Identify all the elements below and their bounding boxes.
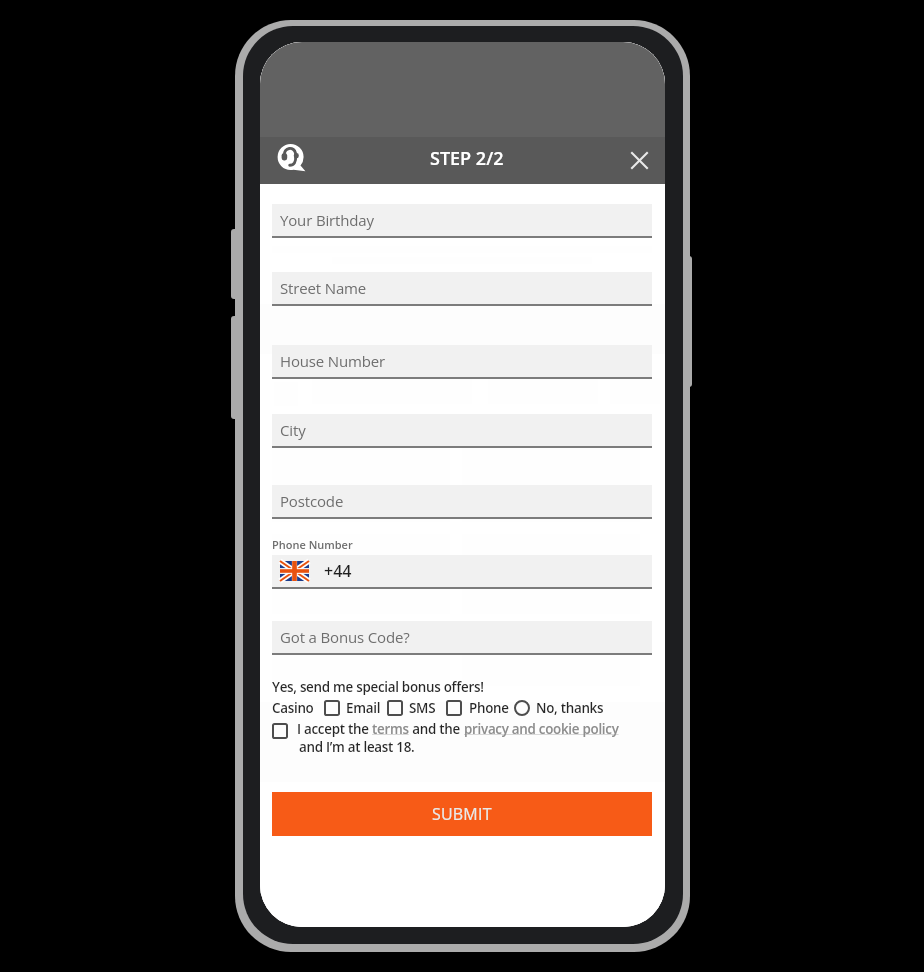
staticText: Street Name xyxy=(280,278,367,298)
staticText: I accept the xyxy=(297,720,372,738)
button[interactable]: Accept terms xyxy=(272,723,288,739)
staticText: Casino xyxy=(272,699,314,717)
button[interactable]: privacy and cookie policy xyxy=(464,720,619,738)
button[interactable]: Street Name xyxy=(272,272,652,306)
staticText: and I’m at least 18. xyxy=(299,738,415,756)
staticText: Email xyxy=(346,699,381,717)
staticText: +44 xyxy=(324,560,352,582)
staticText: Phone xyxy=(469,699,509,717)
staticText: and the xyxy=(409,720,464,738)
staticText: SMS xyxy=(409,699,436,717)
staticText: Your Birthday xyxy=(280,210,374,230)
button[interactable]: terms xyxy=(372,720,409,738)
button[interactable]: Got a Bonus Code? xyxy=(272,621,652,655)
staticText: Got a Bonus Code? xyxy=(280,627,410,647)
button[interactable]: No thanks xyxy=(514,700,530,716)
staticText: House Number xyxy=(280,351,386,371)
staticText: City xyxy=(280,420,306,440)
button[interactable]: City xyxy=(272,414,652,448)
button[interactable]: +44 xyxy=(272,555,652,589)
button[interactable]: Phone opt-in xyxy=(446,700,462,716)
staticText: STEP 2/2 xyxy=(430,146,504,171)
staticText: Yes, send me special bonus offers! xyxy=(272,678,484,696)
button[interactable]: Email opt-in xyxy=(324,700,340,716)
button[interactable]: SMS opt-in xyxy=(387,700,403,716)
staticText: Postcode xyxy=(280,491,344,511)
button[interactable]: House Number xyxy=(272,345,652,379)
button[interactable]: Your Birthday xyxy=(272,204,652,238)
button[interactable]: SUBMIT xyxy=(272,792,652,836)
staticText: Phone Number xyxy=(272,537,353,552)
button[interactable]: Postcode xyxy=(272,485,652,519)
staticText: SUBMIT xyxy=(432,803,492,825)
button[interactable]: Live chat support xyxy=(277,143,306,172)
staticText: No, thanks xyxy=(536,699,604,717)
button[interactable]: Close xyxy=(624,145,654,175)
